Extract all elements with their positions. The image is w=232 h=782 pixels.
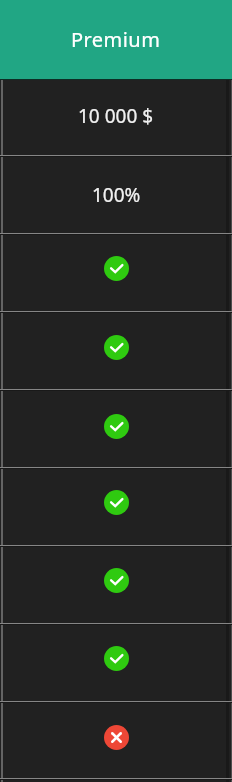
button[interactable]: 100% [0, 155, 232, 233]
other: Not included [104, 725, 129, 750]
staticText: Premium [71, 26, 161, 53]
button[interactable]: Included [0, 623, 232, 701]
other: Included [104, 414, 129, 439]
other: Included [104, 646, 129, 671]
button[interactable]: Included [0, 467, 232, 545]
other: Included [104, 568, 129, 593]
other: Included [104, 490, 129, 515]
button[interactable]: Included [0, 311, 232, 389]
other: Included [104, 335, 129, 360]
staticText: 100% [92, 182, 141, 208]
staticText: 10 000 $ [78, 103, 154, 129]
button[interactable]: Included [0, 389, 232, 467]
button[interactable]: 10 000 $ [0, 79, 232, 155]
other: Included [104, 256, 129, 281]
button[interactable]: Included [0, 233, 232, 311]
button[interactable]: Premium [0, 0, 232, 79]
button[interactable]: Included [0, 545, 232, 623]
button[interactable]: Not included [0, 701, 232, 779]
